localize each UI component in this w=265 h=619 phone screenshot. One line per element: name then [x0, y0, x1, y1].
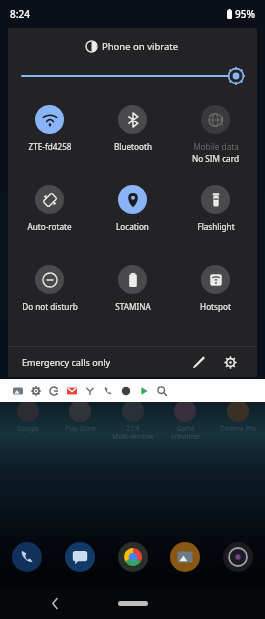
staticText: 8:24 [10, 7, 30, 21]
button[interactable]: App [12, 542, 42, 572]
staticText: Bluetooth [114, 141, 152, 152]
button[interactable]: Brightness [8, 65, 257, 87]
button[interactable]: Hotspot [174, 257, 257, 337]
button[interactable]: Mobile data [174, 97, 257, 177]
button[interactable]: Cinema Pro [213, 400, 263, 433]
button[interactable]: 21:9 Multi-window [108, 400, 158, 441]
button[interactable]: Location [91, 177, 174, 257]
button[interactable]: Do not disturb [8, 257, 91, 337]
button[interactable]: App [170, 542, 200, 572]
button[interactable]: Shortcut [0, 379, 265, 402]
button[interactable]: Settings [217, 349, 243, 375]
button[interactable]: Shortcut [45, 382, 63, 400]
staticText: Game enhancer [171, 424, 200, 441]
button[interactable]: Shortcut [81, 382, 99, 400]
staticText: Emergency calls only [22, 356, 111, 368]
button[interactable]: Emergency calls only [22, 356, 111, 368]
button[interactable]: ZTE-fd4258 [8, 97, 91, 177]
button[interactable]: Auto-rotate [8, 177, 91, 257]
staticText: Phone on vibrate [102, 40, 179, 53]
button[interactable]: App [223, 542, 253, 572]
button[interactable]: Shortcut [9, 382, 27, 400]
button[interactable]: Game enhancer [160, 400, 210, 441]
staticText: Mobile data [193, 141, 239, 152]
button[interactable]: Shortcut [153, 382, 171, 400]
button[interactable]: Vibrate [8, 36, 257, 57]
button[interactable]: Bluetooth [91, 97, 174, 177]
button[interactable]: Shortcut [27, 382, 45, 400]
button[interactable]: Home [118, 601, 148, 606]
button[interactable]: Play Store [55, 400, 105, 433]
button[interactable]: STAMINA [91, 257, 174, 337]
button[interactable]: Shortcut [99, 382, 117, 400]
button[interactable]: Shortcut [135, 382, 153, 400]
button[interactable]: Google [3, 400, 53, 433]
button[interactable]: App [118, 542, 148, 572]
button[interactable]: Shortcut [63, 382, 81, 400]
button[interactable]: Shortcut [117, 382, 135, 400]
staticText: Auto-rotate [27, 221, 72, 232]
staticText: Location [116, 221, 149, 232]
button[interactable]: Edit tiles [185, 349, 211, 375]
button[interactable]: Back [44, 592, 66, 614]
staticText: Do not disturb [22, 301, 78, 312]
staticText: Cinema Pro [220, 424, 256, 433]
staticText: Hotspot [200, 301, 231, 312]
staticText: Play Store [65, 424, 96, 433]
staticText: 95% [235, 7, 255, 21]
staticText: No SIM card [192, 153, 239, 164]
staticText: STAMINA [115, 301, 151, 312]
button[interactable]: App [65, 542, 95, 572]
button[interactable]: Flashlight [174, 177, 257, 257]
staticText: ZTE-fd4258 [28, 141, 72, 152]
staticText: Flashlight [197, 221, 235, 232]
staticText: Google [17, 424, 39, 433]
other: Vibrate [86, 41, 97, 52]
staticText: 21:9 Multi-window [112, 424, 154, 441]
